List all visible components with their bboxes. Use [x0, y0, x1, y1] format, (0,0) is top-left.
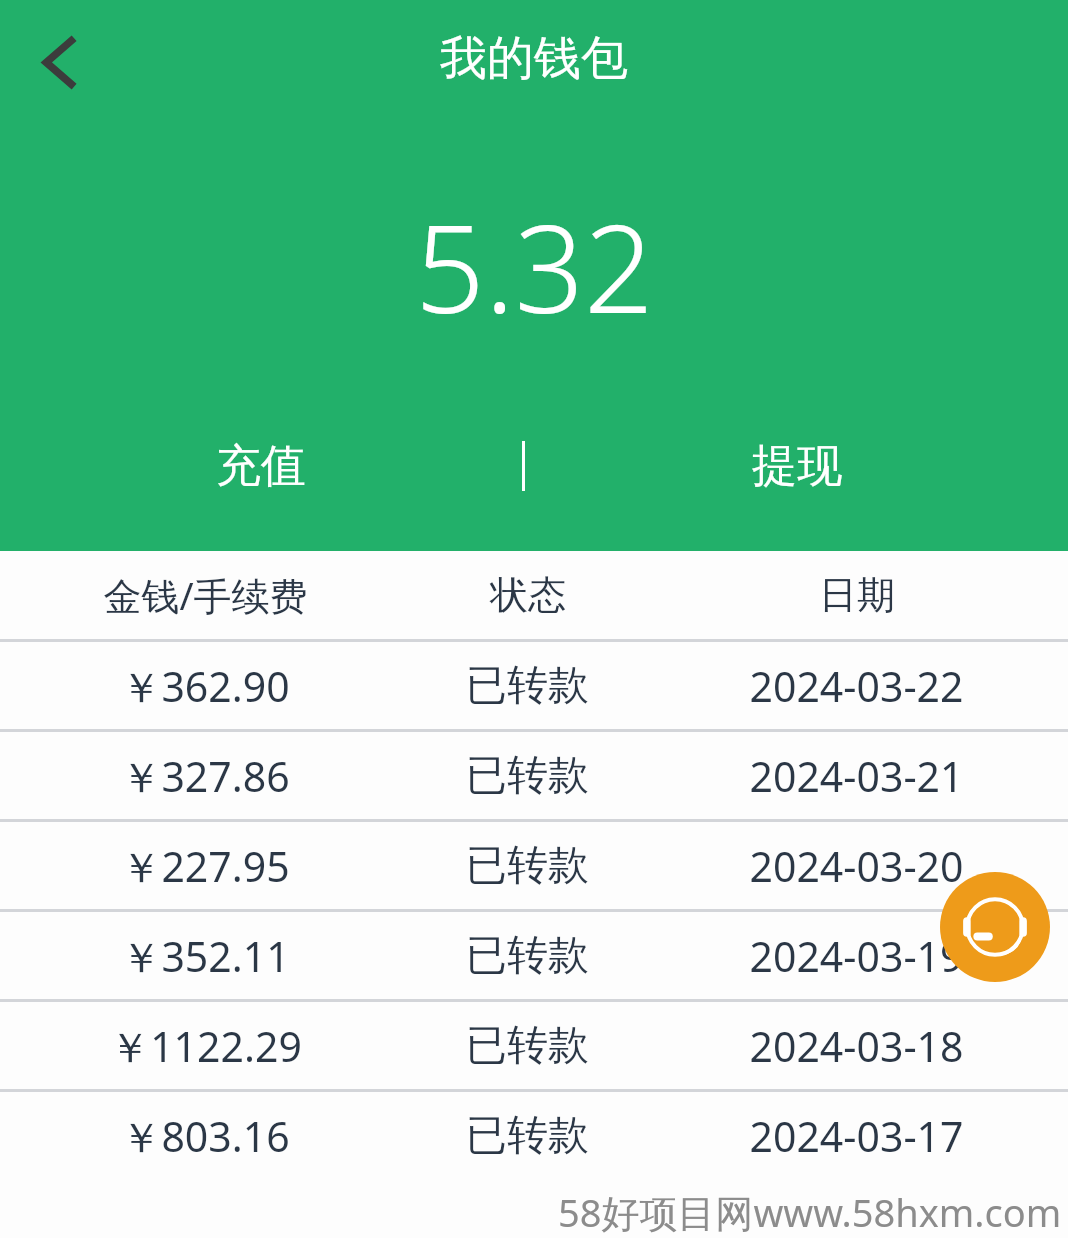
- staticText: 2024-03-18: [749, 1018, 964, 1074]
- staticText: 已转款: [466, 1110, 589, 1162]
- staticText: ￥1122.29: [109, 1018, 302, 1074]
- staticText: 已转款: [466, 1020, 589, 1072]
- button[interactable]: ￥227.95: [0, 822, 1068, 909]
- button[interactable]: Back: [20, 21, 102, 103]
- staticText: 日期: [819, 571, 895, 619]
- button[interactable]: ￥327.86: [0, 732, 1068, 819]
- button[interactable]: ￥1122.29: [0, 1002, 1068, 1089]
- staticText: 充值: [216, 438, 306, 495]
- button[interactable]: ￥352.11: [0, 912, 1068, 999]
- staticText: 已转款: [466, 660, 589, 712]
- staticText: 已转款: [466, 840, 589, 892]
- button[interactable]: ￥362.90: [0, 642, 1068, 729]
- staticText: 2024-03-20: [749, 838, 964, 894]
- staticText: 5.32: [415, 183, 654, 349]
- button[interactable]: 充值: [0, 420, 522, 512]
- staticText: 2024-03-22: [749, 658, 964, 714]
- staticText: ￥362.90: [120, 658, 290, 714]
- staticText: 已转款: [466, 930, 589, 982]
- staticText: 2024-03-21: [749, 748, 964, 804]
- staticText: 已转款: [466, 750, 589, 802]
- staticText: 58好项目网www.58hxm.com: [558, 1186, 1062, 1238]
- staticText: 2024-03-17: [749, 1108, 964, 1164]
- staticText: 金钱/手续费: [103, 569, 308, 621]
- staticText: 提现: [752, 438, 842, 495]
- button[interactable]: ￥803.16: [0, 1092, 1068, 1179]
- staticText: 我的钱包: [440, 29, 628, 88]
- staticText: ￥803.16: [120, 1108, 290, 1164]
- staticText: 2024-03-19: [749, 928, 964, 984]
- staticText: 状态: [490, 571, 566, 619]
- staticText: ￥352.11: [120, 928, 290, 984]
- button[interactable]: Customer service: [940, 872, 1050, 982]
- staticText: ￥227.95: [120, 838, 290, 894]
- staticText: ￥327.86: [120, 748, 290, 804]
- button[interactable]: 提现: [525, 420, 1068, 512]
